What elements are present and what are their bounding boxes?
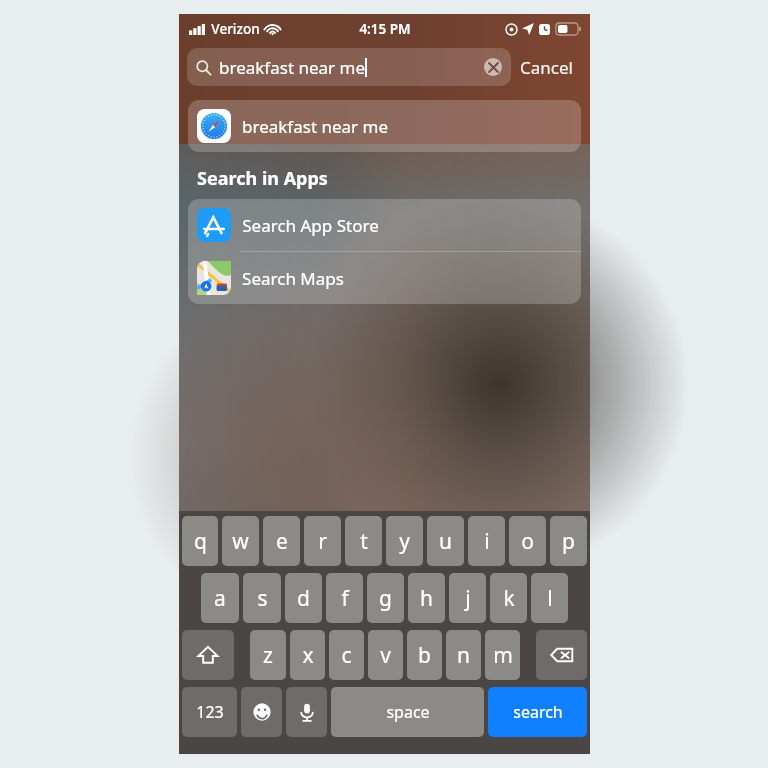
staticText: breakfast near me xyxy=(219,56,365,79)
button[interactable]: Search App Store xyxy=(188,199,581,251)
staticText: l xyxy=(547,584,553,613)
button[interactable]: a xyxy=(201,573,239,623)
staticText: Verizon xyxy=(211,20,260,38)
staticText: c xyxy=(341,641,352,670)
staticText: j xyxy=(465,584,471,613)
button[interactable]: breakfast near me xyxy=(188,100,581,152)
button[interactable]: space xyxy=(331,687,484,737)
button[interactable]: i xyxy=(468,516,505,566)
button[interactable]: x xyxy=(290,630,325,680)
staticText: r xyxy=(318,527,327,556)
button[interactable]: 123 xyxy=(182,687,237,737)
staticText: b xyxy=(418,641,431,670)
staticText: h xyxy=(420,584,433,613)
button[interactable]: o xyxy=(509,516,546,566)
button[interactable]: Backspace xyxy=(536,630,587,680)
button[interactable]: Dictation xyxy=(286,687,327,737)
staticText: i xyxy=(484,527,490,556)
button[interactable]: m xyxy=(485,630,520,680)
button[interactable]: w xyxy=(222,516,259,566)
staticText: t xyxy=(360,527,368,556)
button[interactable]: u xyxy=(427,516,464,566)
button[interactable]: j xyxy=(449,573,486,623)
button[interactable]: z xyxy=(250,630,286,680)
staticText: w xyxy=(232,527,249,556)
staticText: x xyxy=(302,641,314,670)
button[interactable]: Emoji xyxy=(241,687,282,737)
staticText: Cancel xyxy=(520,56,573,79)
staticText: z xyxy=(263,641,273,670)
button[interactable]: k xyxy=(490,573,527,623)
staticText: u xyxy=(439,527,452,556)
staticText: v xyxy=(380,641,391,670)
staticText: q xyxy=(194,527,207,556)
staticText: g xyxy=(379,584,392,613)
button[interactable]: Shift xyxy=(182,630,234,680)
button[interactable]: g xyxy=(367,573,404,623)
button[interactable]: l xyxy=(531,573,568,623)
button[interactable]: c xyxy=(329,630,364,680)
staticText: k xyxy=(503,584,515,613)
staticText: 4:15 PM xyxy=(359,20,411,38)
staticText: breakfast near me xyxy=(242,115,388,138)
button[interactable]: y xyxy=(386,516,423,566)
button[interactable]: s xyxy=(243,573,281,623)
button[interactable]: r xyxy=(304,516,341,566)
staticText: n xyxy=(457,641,470,670)
staticText: y xyxy=(399,527,410,556)
staticText: s xyxy=(257,584,268,613)
staticText: 123 xyxy=(196,701,224,723)
button[interactable]: t xyxy=(345,516,382,566)
staticText: f xyxy=(341,584,349,613)
staticText: e xyxy=(276,527,288,556)
staticText: a xyxy=(214,584,226,613)
staticText: Search in Apps xyxy=(197,166,328,191)
staticText: search xyxy=(513,701,563,723)
staticText: o xyxy=(521,527,534,556)
staticText: Search Maps xyxy=(242,267,344,290)
staticText: p xyxy=(562,527,575,556)
button[interactable]: b xyxy=(407,630,442,680)
button[interactable]: q xyxy=(182,516,218,566)
button[interactable]: p xyxy=(550,516,587,566)
button[interactable]: v xyxy=(368,630,403,680)
button[interactable]: d xyxy=(285,573,322,623)
staticText: d xyxy=(297,584,310,613)
button[interactable]: e xyxy=(263,516,300,566)
staticText: space xyxy=(386,701,430,723)
button[interactable]: n xyxy=(446,630,481,680)
button[interactable]: search xyxy=(488,687,587,737)
button[interactable]: Search Maps xyxy=(188,252,581,304)
staticText: m xyxy=(493,641,513,670)
button[interactable]: breakfast near me xyxy=(187,48,511,86)
button[interactable]: f xyxy=(326,573,363,623)
button[interactable]: h xyxy=(408,573,445,623)
button[interactable]: Clear text xyxy=(484,58,502,76)
staticText: Search App Store xyxy=(242,214,379,237)
button[interactable]: Cancel xyxy=(511,50,582,85)
